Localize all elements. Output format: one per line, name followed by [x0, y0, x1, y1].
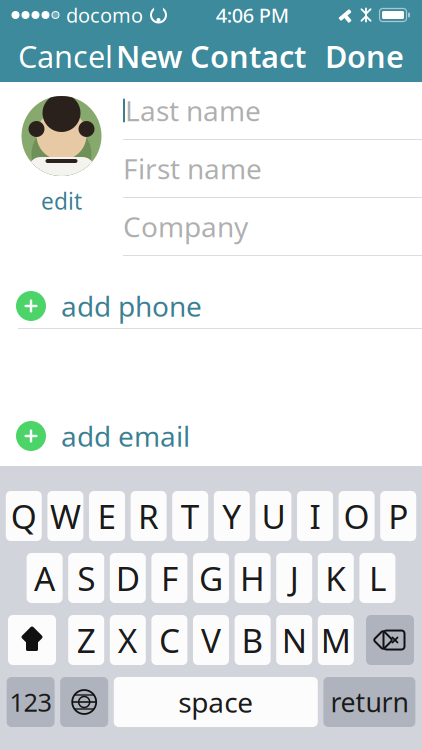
- staticText: space: [178, 683, 253, 721]
- staticText: D: [116, 556, 140, 600]
- staticText: First name: [123, 150, 262, 187]
- button[interactable]: Cancel: [4, 30, 127, 82]
- button[interactable]: D: [110, 553, 146, 603]
- button[interactable]: B: [235, 615, 271, 665]
- button[interactable]: Done: [311, 30, 418, 82]
- staticText: P: [388, 494, 408, 538]
- button[interactable]: N: [276, 615, 312, 665]
- staticText: B: [242, 618, 264, 662]
- button[interactable]: Z: [68, 615, 104, 665]
- button[interactable]: add email: [0, 414, 422, 458]
- staticText: C: [159, 618, 180, 662]
- staticText: docomo: [66, 2, 143, 28]
- staticText: H: [240, 556, 265, 600]
- button[interactable]: O: [339, 491, 375, 541]
- staticText: G: [199, 556, 223, 600]
- staticText: X: [118, 618, 138, 662]
- button[interactable]: K: [318, 553, 354, 603]
- button[interactable]: Q: [6, 491, 42, 541]
- staticText: Y: [222, 494, 241, 538]
- button[interactable]: J: [276, 553, 312, 603]
- staticText: L: [369, 556, 386, 600]
- staticText: New Contact: [116, 36, 306, 76]
- button[interactable]: U: [255, 491, 291, 541]
- button[interactable]: X: [110, 615, 146, 665]
- button[interactable]: L: [359, 553, 395, 603]
- button[interactable]: Delete: [366, 615, 414, 665]
- staticText: J: [290, 556, 299, 600]
- button[interactable]: Edit photo: [0, 82, 123, 216]
- staticText: R: [138, 494, 159, 538]
- button[interactable]: I: [297, 491, 333, 541]
- staticText: Z: [77, 618, 96, 662]
- button[interactable]: A: [27, 553, 63, 603]
- staticText: F: [161, 556, 178, 600]
- button[interactable]: V: [193, 615, 229, 665]
- staticText: S: [77, 556, 95, 600]
- button[interactable]: Shift: [8, 615, 56, 665]
- staticText: N: [282, 618, 307, 662]
- button[interactable]: H: [235, 553, 271, 603]
- button[interactable]: add phone: [0, 284, 422, 328]
- button[interactable]: M: [318, 615, 354, 665]
- staticText: I: [309, 494, 320, 538]
- staticText: return: [330, 684, 408, 720]
- button[interactable]: T: [172, 491, 208, 541]
- button[interactable]: G: [193, 553, 229, 603]
- staticText: Done: [325, 36, 404, 76]
- staticText: W: [50, 494, 81, 538]
- button[interactable]: return: [323, 677, 415, 727]
- staticText: 4:06 PM: [216, 2, 289, 28]
- staticText: U: [261, 494, 285, 538]
- staticText: Last name: [125, 92, 261, 129]
- staticText: E: [97, 494, 116, 538]
- staticText: add email: [61, 417, 190, 455]
- staticText: T: [181, 494, 200, 538]
- staticText: A: [34, 556, 55, 600]
- button[interactable]: R: [131, 491, 167, 541]
- button[interactable]: E: [89, 491, 125, 541]
- button[interactable]: Y: [214, 491, 250, 541]
- staticText: add phone: [61, 287, 202, 325]
- staticText: Company: [123, 208, 248, 245]
- button[interactable]: Next keyboard: [60, 677, 108, 727]
- staticText: V: [201, 618, 221, 662]
- staticText: 123: [10, 685, 52, 719]
- button[interactable]: F: [151, 553, 187, 603]
- staticText: Cancel: [18, 36, 113, 76]
- staticText: M: [321, 618, 351, 662]
- staticText: edit: [41, 186, 82, 216]
- button[interactable]: P: [380, 491, 416, 541]
- staticText: K: [325, 556, 346, 600]
- staticText: O: [344, 494, 370, 538]
- button[interactable]: W: [47, 491, 83, 541]
- button[interactable]: space: [114, 677, 318, 727]
- staticText: Q: [11, 494, 37, 538]
- button[interactable]: C: [151, 615, 187, 665]
- button[interactable]: 123: [7, 677, 55, 727]
- button[interactable]: S: [68, 553, 104, 603]
